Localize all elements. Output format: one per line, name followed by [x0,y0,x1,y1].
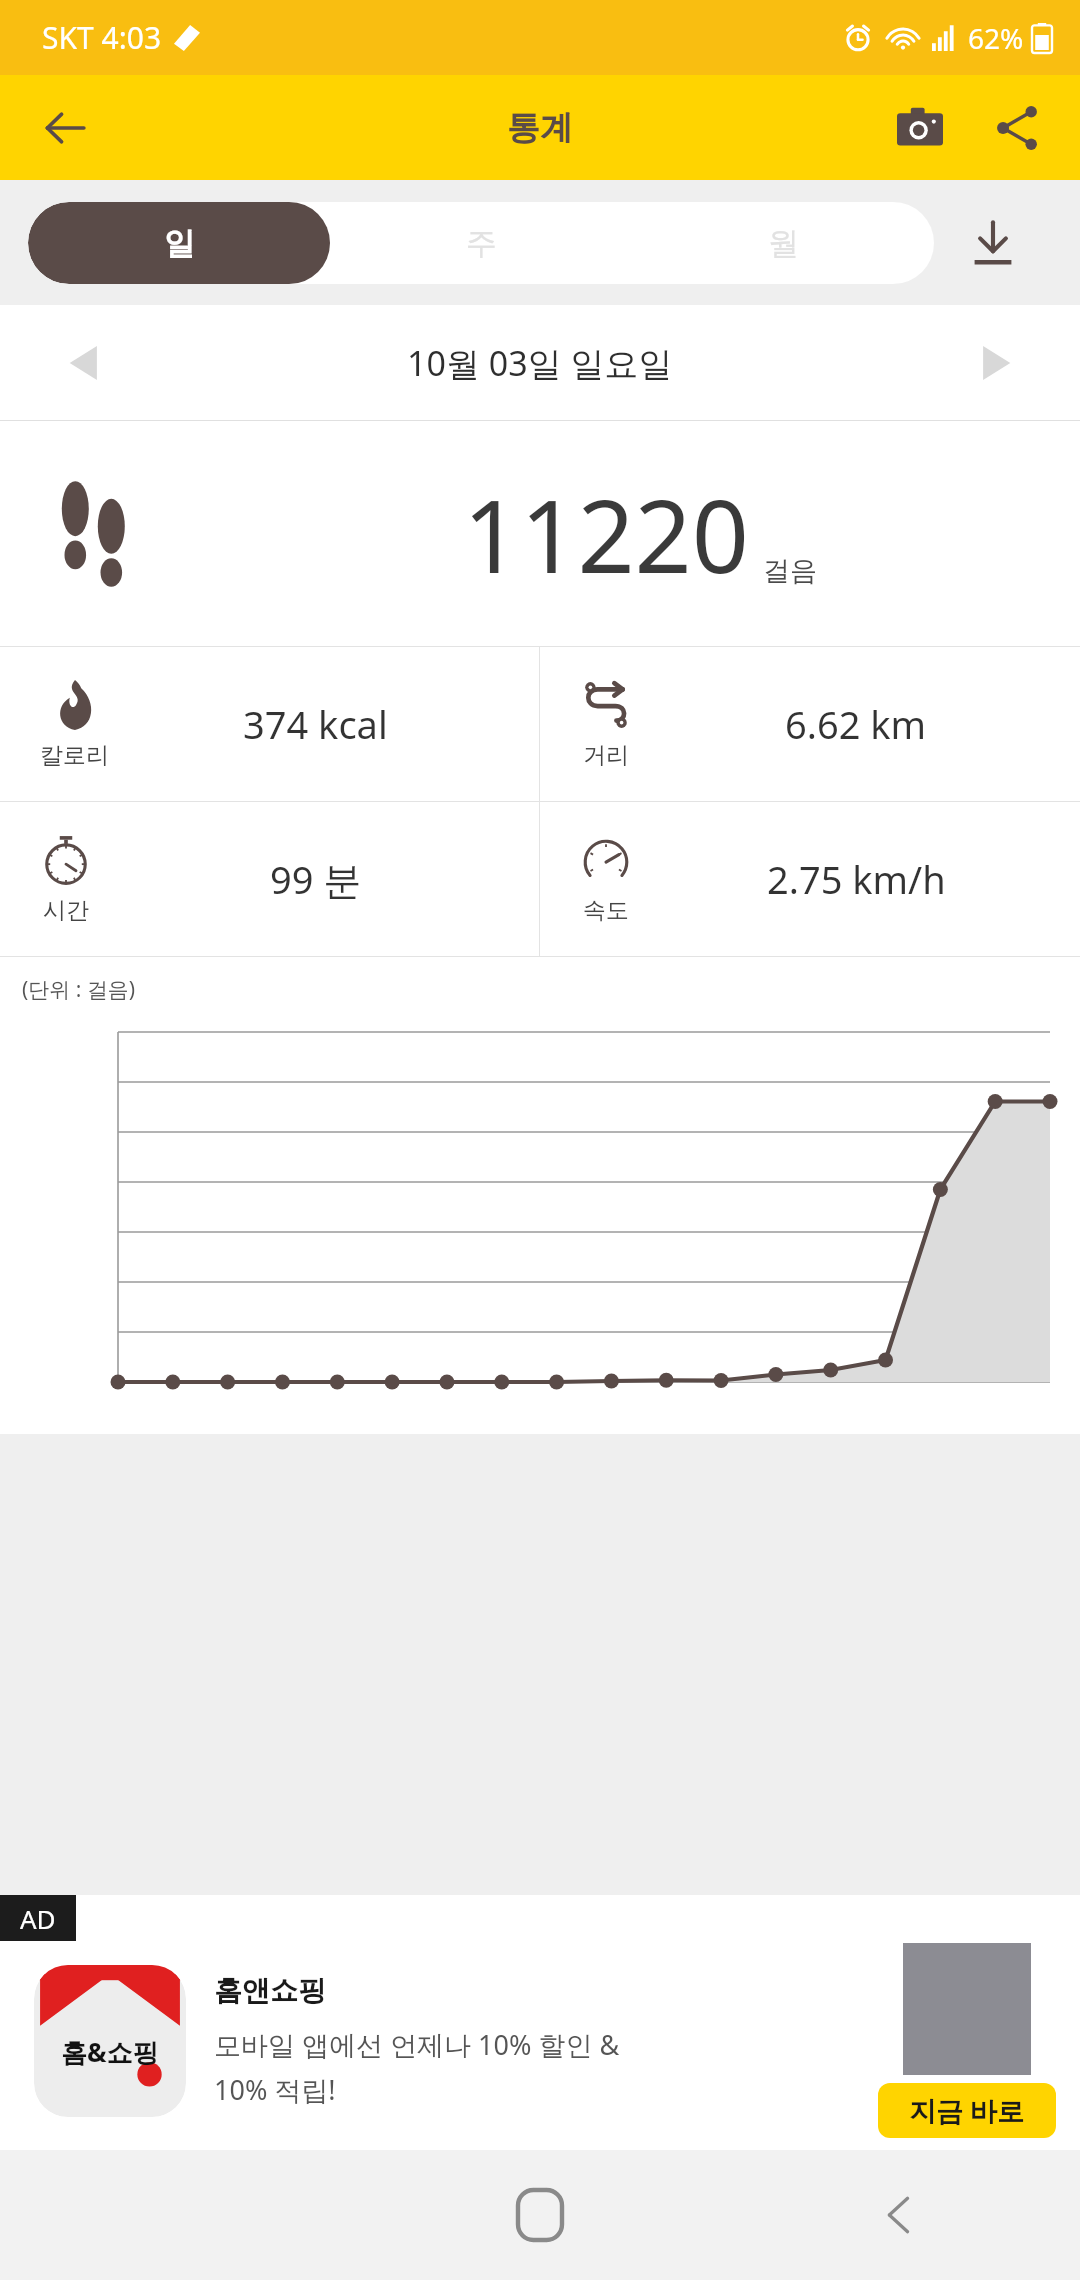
staticText: SKT 4:03 [42,17,162,58]
staticText: 홈&쇼핑 [61,2034,159,2070]
staticText: 시간 [43,896,89,925]
staticText: AD [20,1901,56,1936]
staticText: 99 분 [270,853,362,905]
button[interactable]: 11220 [0,421,1080,646]
button[interactable]: 일 [28,202,330,284]
button[interactable]: Camera [880,88,960,168]
staticText: 6.62 km [785,698,927,750]
button[interactable]: Back [30,93,100,163]
staticText: (단위 : 걸음) [22,975,136,1004]
staticText: 모바일 앱에선 언제나 10% 할인 & [214,2026,620,2063]
staticText: 11220 [463,466,749,602]
staticText: 통계 [507,107,573,149]
staticText: 월 [768,224,799,263]
staticText: 거리 [583,741,629,770]
staticText: 걸음 [763,554,817,588]
button[interactable]: AD [0,1895,1080,2150]
staticText: 10% 적립! [214,2071,336,2108]
button[interactable]: Previous day [50,328,120,398]
button[interactable]: Download [934,202,1052,284]
button[interactable]: Back [720,2150,1080,2280]
staticText: 홈앤쇼핑 [214,1973,326,2008]
button[interactable]: 지금 바로 [878,2083,1056,2138]
staticText: 374 kcal [243,698,388,750]
button[interactable]: 월 [632,202,934,284]
button[interactable]: Share [978,88,1058,168]
button[interactable]: 칼로리 [0,647,539,801]
button[interactable]: Next day [960,328,1030,398]
button[interactable]: Home [360,2150,720,2280]
staticText: 62% [968,19,1024,57]
staticText: 10월 03일 일요일 [407,340,673,386]
staticText: 일 [164,224,195,263]
staticText: 지금 바로 [909,2092,1025,2129]
button[interactable]: 시간 [0,802,539,956]
staticText: 칼로리 [40,741,109,770]
staticText: 주 [466,224,497,263]
button[interactable]: 속도 [540,802,1080,956]
staticText: 2.75 km/h [767,853,946,905]
staticText: 속도 [583,896,629,925]
button[interactable]: 거리 [540,647,1080,801]
